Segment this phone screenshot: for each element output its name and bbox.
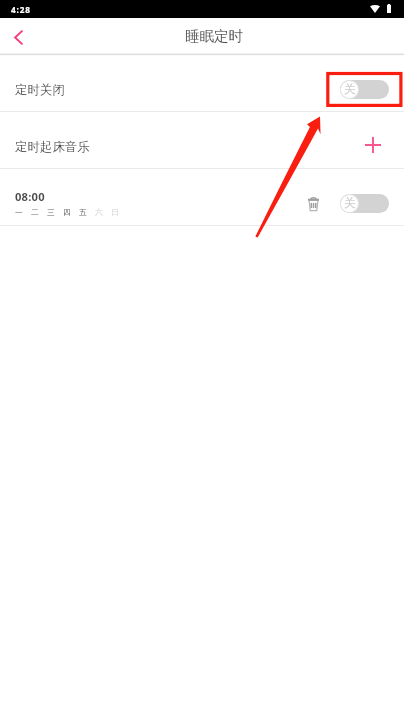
staticText: 一 — [15, 208, 23, 218]
staticText: 六 — [95, 208, 103, 218]
button[interactable]: 08:00 — [0, 169, 404, 225]
staticText: 三 — [47, 208, 55, 218]
staticText: 关 — [344, 196, 356, 211]
button[interactable]: Toggle — [340, 80, 389, 99]
button[interactable]: Toggle — [340, 194, 389, 213]
staticText: 定时关闭 — [15, 82, 65, 98]
button[interactable]: Back — [0, 18, 36, 54]
button[interactable]: Add — [357, 129, 389, 161]
button[interactable]: 定时关闭 — [0, 55, 404, 111]
staticText: 日 — [111, 208, 119, 218]
button[interactable]: Delete — [302, 193, 324, 215]
staticText: 五 — [79, 208, 87, 218]
staticText: 二 — [31, 208, 39, 218]
staticText: 四 — [63, 208, 71, 218]
staticText: 08:00 — [15, 189, 45, 204]
staticText: 定时起床音乐 — [15, 139, 90, 155]
staticText: 4:28 — [11, 4, 31, 15]
staticText: 关 — [344, 82, 356, 97]
staticText: 睡眠定时 — [185, 27, 243, 45]
button[interactable]: 定时起床音乐 — [0, 112, 404, 168]
